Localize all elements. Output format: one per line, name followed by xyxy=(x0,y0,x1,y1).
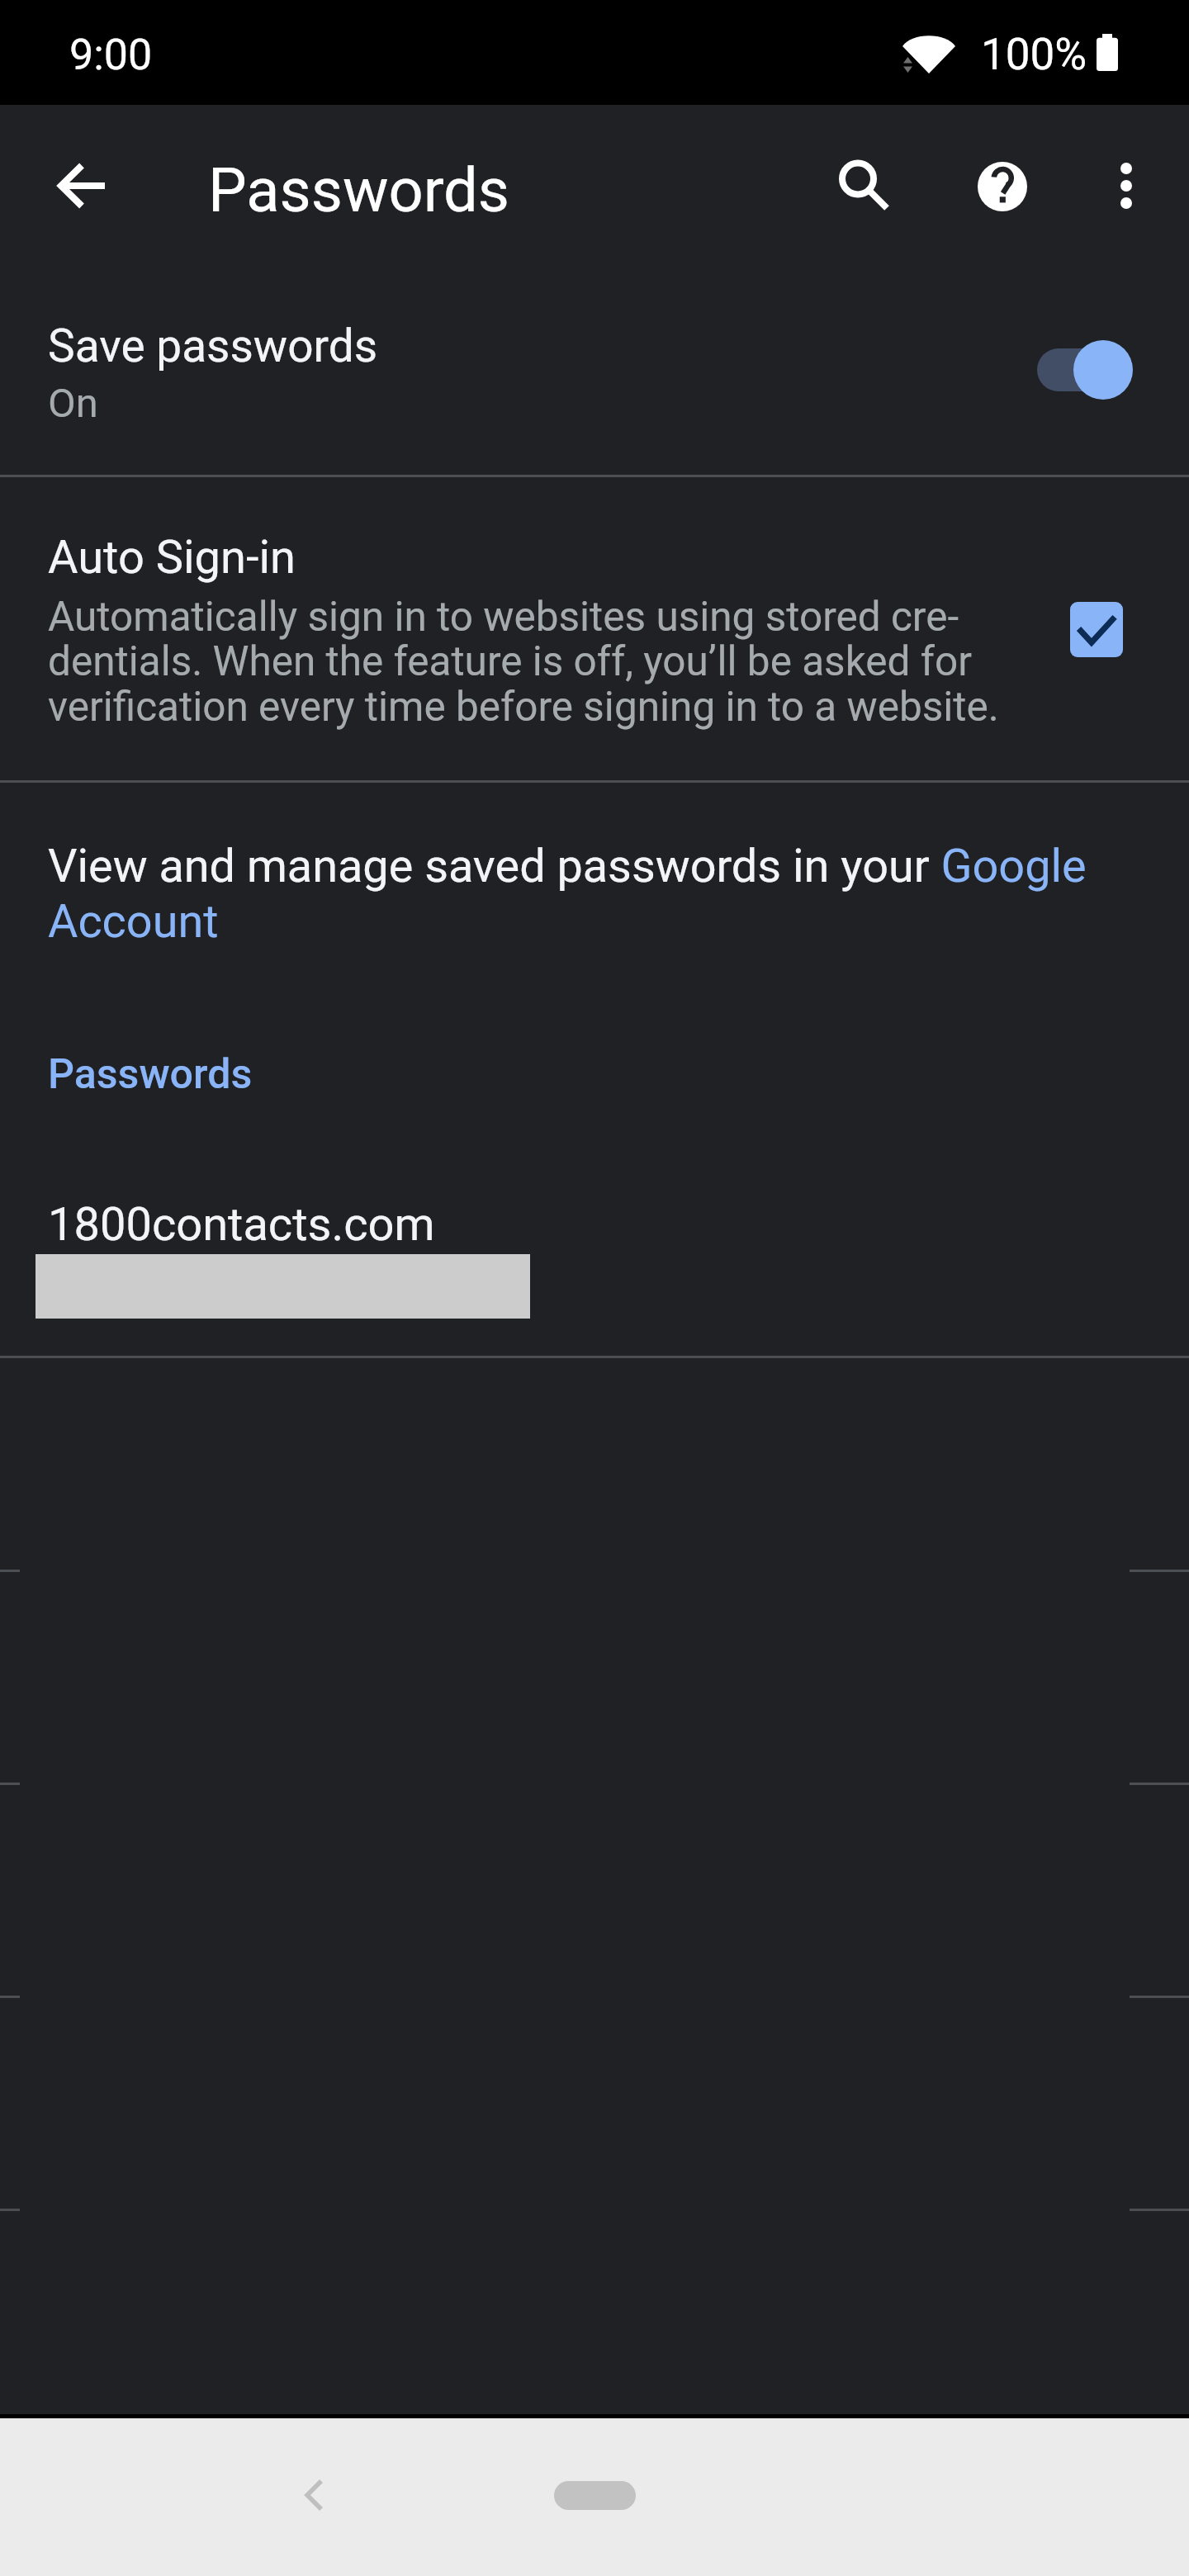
button[interactable]: View and manage saved passwords in your … xyxy=(48,839,1117,949)
staticText: Auto Sign-in xyxy=(48,530,296,585)
button[interactable]: Help xyxy=(940,125,1064,249)
other: Auto Sign-in, checked xyxy=(1070,602,1123,657)
button[interactable]: Back xyxy=(11,116,151,256)
button[interactable]: Home xyxy=(545,2446,644,2545)
staticText: On xyxy=(48,380,98,427)
button[interactable]: More options xyxy=(1064,124,1188,248)
button[interactable]: Search xyxy=(802,123,926,247)
button[interactable]: Auto Sign-in xyxy=(0,477,1189,780)
staticText: 100% xyxy=(981,29,1087,80)
button[interactable]: 1800contacts.com xyxy=(0,1172,1189,1356)
staticText: Save passwords xyxy=(48,320,378,372)
staticText: 1800contacts.com xyxy=(48,1197,435,1252)
staticText: Passwords xyxy=(48,1050,253,1099)
button[interactable]: Back xyxy=(263,2446,362,2545)
staticText: 9:00 xyxy=(69,30,153,80)
staticText: Passwords xyxy=(208,154,510,226)
button[interactable]: Save passwords xyxy=(0,274,1189,475)
other: Save passwords, on xyxy=(1037,340,1133,400)
staticText: Automatically sign in to websites using … xyxy=(48,593,999,731)
